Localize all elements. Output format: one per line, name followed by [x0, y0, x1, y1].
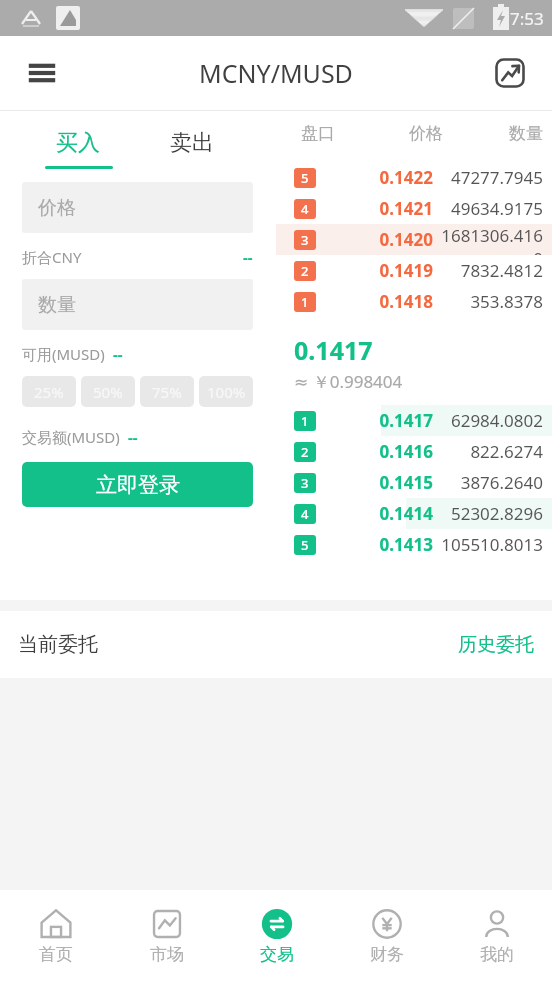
staticText: 折合CNY [22, 247, 82, 267]
button[interactable]: 5 [276, 162, 552, 193]
button[interactable]: 历史委托 [458, 633, 534, 657]
staticText: 0.1415 [360, 471, 433, 494]
staticText: 3876.2640 [433, 471, 543, 494]
staticText: 3 [301, 474, 309, 492]
staticText: 4 [301, 505, 309, 523]
staticText: 47277.7945 [433, 166, 543, 189]
staticText: -- [128, 427, 138, 447]
staticText: 可用(MUSD) [22, 344, 105, 364]
staticText: 0.1419 [360, 259, 433, 282]
button[interactable]: 50% [81, 376, 135, 407]
staticText: 0.1422 [360, 166, 433, 189]
staticText: 0.1417 [360, 409, 433, 432]
button[interactable]: 4 [276, 193, 552, 224]
button[interactable]: 1 [276, 405, 552, 436]
button[interactable]: 我的 [442, 890, 552, 981]
staticText: 0.1418 [360, 290, 433, 313]
staticText: 买入 [56, 129, 100, 157]
button[interactable]: 4 [276, 498, 552, 529]
button[interactable]: 5 [276, 529, 552, 560]
staticText: 盘口 [276, 123, 360, 144]
button[interactable]: 1 [276, 286, 552, 317]
staticText: 交易 [260, 944, 294, 965]
staticText: 数量 [38, 293, 76, 317]
staticText: 1 [301, 412, 309, 430]
button[interactable]: 首页 [0, 890, 111, 981]
staticText: 卖出 [170, 129, 214, 157]
staticText: 4 [301, 200, 309, 218]
staticText: 353.8378 [433, 290, 543, 313]
button[interactable]: Chart [482, 45, 538, 101]
button[interactable]: 3 [276, 224, 552, 255]
staticText: 105510.8013 [433, 533, 543, 556]
button[interactable]: 100% [199, 376, 253, 407]
staticText: 75% [152, 382, 182, 402]
button[interactable]: 卖出 [136, 111, 248, 175]
staticText: 5 [301, 169, 309, 187]
button[interactable]: 数量 [22, 279, 253, 330]
staticText: 0.1420 [360, 228, 433, 251]
staticText: 历史委托 [458, 633, 534, 657]
staticText: 7832.4812 [433, 259, 543, 282]
staticText: MCNY/MUSD [199, 56, 353, 90]
staticText: 62984.0802 [433, 409, 543, 432]
staticText: -- [243, 247, 253, 267]
staticText: 价格 [38, 196, 76, 220]
button[interactable]: Menu [14, 45, 70, 101]
staticText: 0.1413 [360, 533, 433, 556]
staticText: -- [113, 344, 123, 364]
staticText: 50% [93, 382, 123, 402]
staticText: 1 [301, 293, 309, 311]
staticText: 价格 [360, 123, 443, 144]
staticText: ≈ ￥0.998404 [294, 370, 403, 393]
button[interactable]: 75% [140, 376, 194, 407]
staticText: 822.6274 [433, 440, 543, 463]
staticText: 0.1414 [360, 502, 433, 525]
button[interactable]: 25% [22, 376, 76, 407]
button[interactable]: 买入 [22, 111, 134, 175]
staticText: 立即登录 [96, 472, 180, 498]
staticText: 数量 [443, 123, 543, 144]
staticText: 52302.8296 [433, 502, 543, 525]
staticText: 2 [301, 262, 309, 280]
staticText: 0.1421 [360, 197, 433, 220]
button[interactable]: 财务 [332, 890, 442, 981]
button[interactable]: 市场 [111, 890, 222, 981]
staticText: 交易额(MUSD) [22, 427, 120, 447]
button[interactable]: 交易 [222, 890, 332, 981]
button[interactable]: 价格 [22, 182, 253, 233]
staticText: 首页 [39, 944, 73, 965]
staticText: 0.1417 [294, 333, 373, 367]
staticText: 财务 [370, 944, 404, 965]
button[interactable]: 3 [276, 467, 552, 498]
staticText: 25% [34, 382, 64, 402]
staticText: 2 [301, 443, 309, 461]
staticText: 3 [301, 231, 309, 249]
staticText: 1681306.4160 [433, 224, 543, 255]
staticText: 7:53 [510, 7, 544, 30]
staticText: 我的 [480, 944, 514, 965]
staticText: 市场 [150, 944, 184, 965]
button[interactable]: 2 [276, 255, 552, 286]
staticText: 0.1416 [360, 440, 433, 463]
button[interactable]: 立即登录 [22, 462, 253, 507]
button[interactable]: 2 [276, 436, 552, 467]
staticText: 100% [207, 382, 246, 402]
staticText: 49634.9175 [433, 197, 543, 220]
staticText: 当前委托 [18, 632, 98, 657]
staticText: 5 [301, 536, 309, 554]
